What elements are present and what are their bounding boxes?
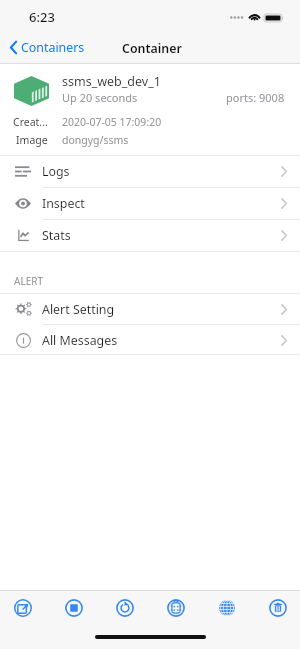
button[interactable]: Delete <box>262 592 294 624</box>
staticText: Stats <box>42 227 71 244</box>
button[interactable]: Stop <box>58 592 90 624</box>
staticText: 6:23 <box>29 8 55 26</box>
staticText: Container <box>122 40 182 57</box>
staticText: 2020-07-05 17:09:20 <box>62 115 162 129</box>
staticText: Inspect <box>42 195 85 212</box>
button[interactable]: Edit <box>7 592 39 624</box>
button[interactable]: Open web <box>211 592 243 624</box>
button[interactable]: Containers <box>0 34 95 61</box>
staticText: Logs <box>42 163 70 180</box>
staticText: ALERT <box>14 274 43 288</box>
staticText: All Messages <box>42 332 118 349</box>
staticText: ports: 9008 <box>226 90 285 105</box>
staticText: dongyg/ssms <box>62 133 129 147</box>
button[interactable]: Stats <box>0 219 300 251</box>
staticText: Alert Setting <box>42 301 115 318</box>
button[interactable]: Restart <box>109 592 141 624</box>
button[interactable]: Debug <box>160 592 192 624</box>
button[interactable]: Inspect <box>0 187 300 219</box>
staticText: Image <box>16 133 48 147</box>
staticText: Creat... <box>13 115 48 129</box>
button[interactable]: Alert Setting <box>0 293 300 325</box>
staticText: Up 20 seconds <box>62 90 138 105</box>
button[interactable]: Logs <box>0 155 300 187</box>
staticText: ssms_web_dev_1 <box>62 73 161 90</box>
staticText: Containers <box>21 39 85 56</box>
button[interactable]: All Messages <box>0 324 300 356</box>
